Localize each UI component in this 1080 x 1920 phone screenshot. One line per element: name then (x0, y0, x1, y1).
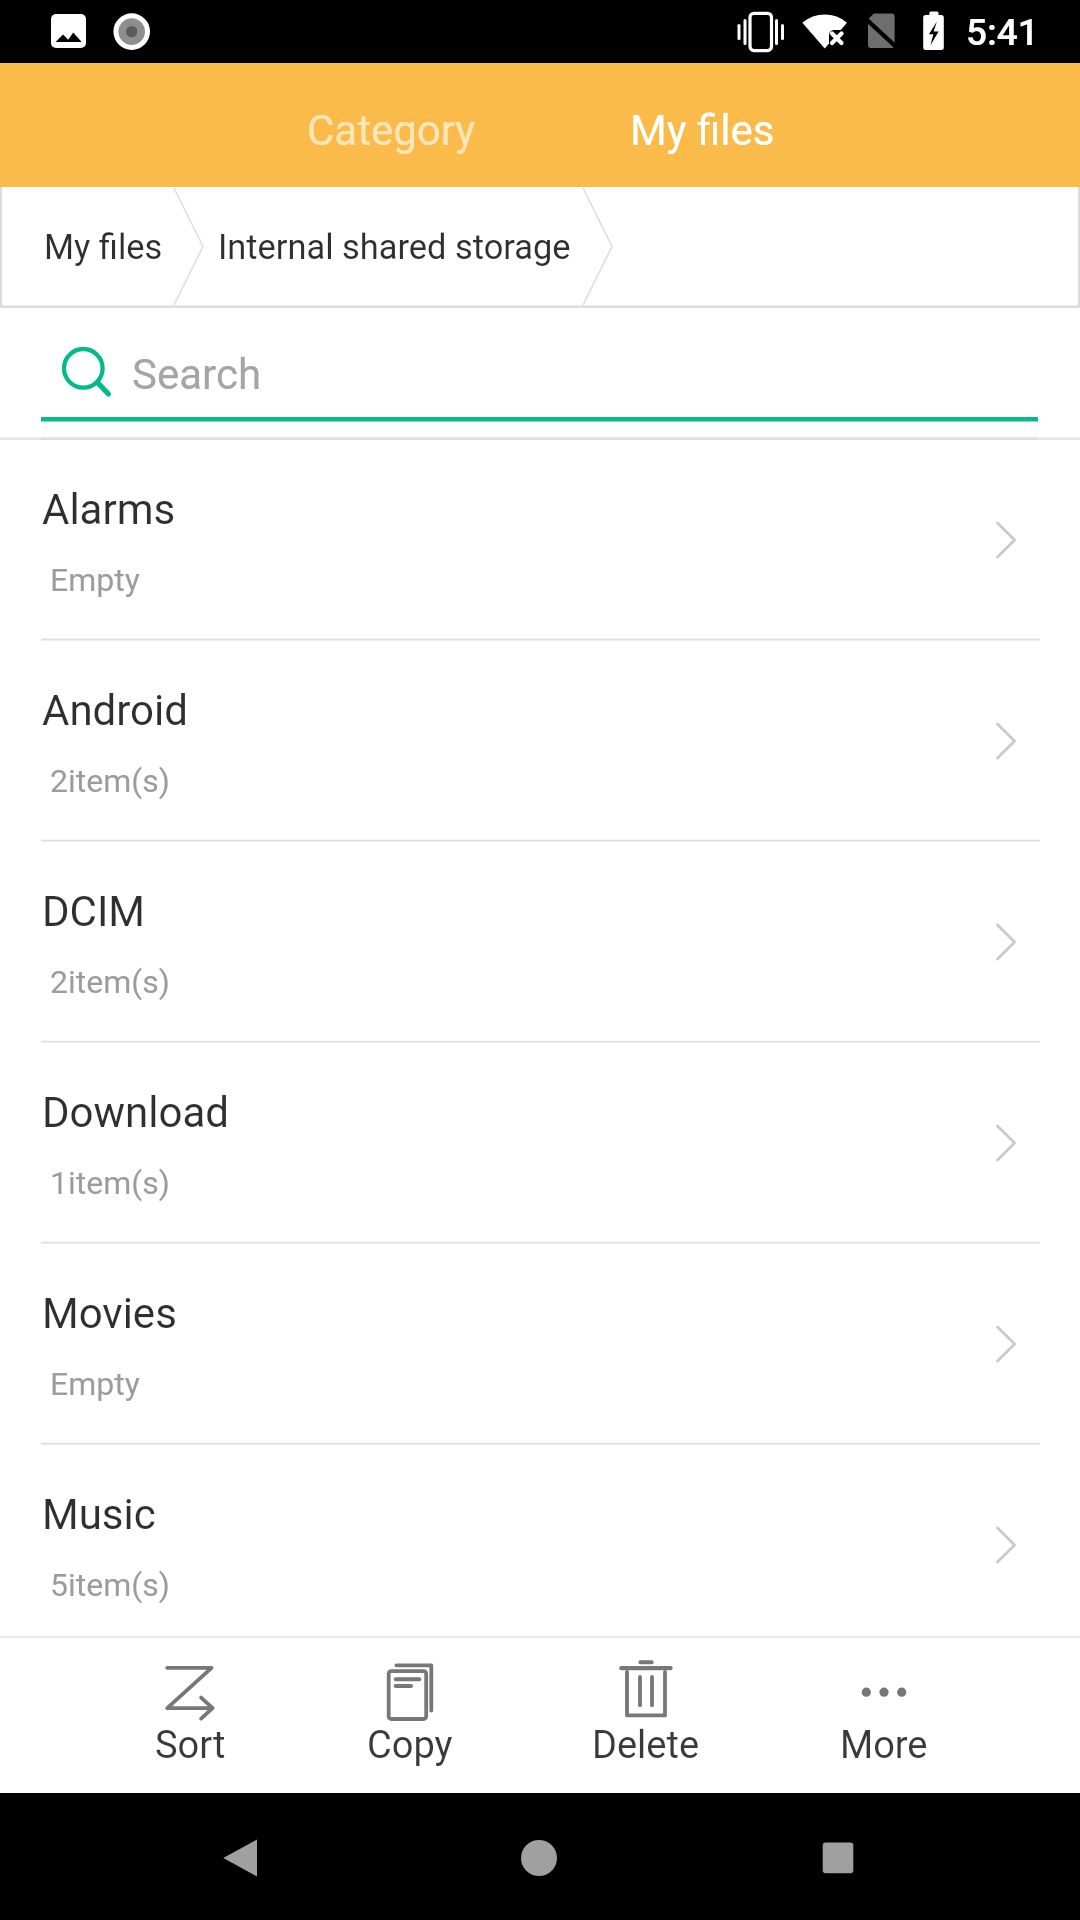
staticText: Movies (42, 1289, 177, 1338)
staticText: Search (132, 350, 262, 399)
button[interactable]: Android (0, 641, 1080, 842)
staticText: Music (42, 1490, 156, 1539)
staticText: Category (307, 106, 476, 155)
staticText: Alarms (42, 485, 176, 534)
button[interactable]: Delete (541, 1636, 751, 1793)
staticText: My files (630, 106, 775, 155)
button[interactable]: Music (0, 1445, 1080, 1636)
staticText: 5:41 (966, 11, 1039, 54)
button[interactable]: Back (180, 1793, 300, 1920)
button[interactable]: Search (41, 322, 1038, 421)
staticText: 1item(s) (50, 1164, 170, 1202)
staticText: 5item(s) (50, 1566, 170, 1604)
button[interactable]: Recent apps (778, 1793, 898, 1920)
button[interactable]: Alarms (0, 440, 1080, 641)
staticText: 2item(s) (50, 963, 170, 1001)
staticText: Android (42, 686, 188, 735)
staticText: 2item(s) (50, 762, 170, 800)
button[interactable]: More (779, 1636, 989, 1793)
staticText: More (840, 1723, 928, 1768)
staticText: My files (44, 227, 163, 267)
button[interactable]: Category (231, 63, 551, 187)
staticText: Download (42, 1088, 229, 1137)
button[interactable]: DCIM (0, 842, 1080, 1043)
button[interactable]: Download (0, 1043, 1080, 1244)
button[interactable]: Copy (305, 1636, 515, 1793)
staticText: Copy (367, 1723, 453, 1768)
staticText: Delete (592, 1723, 700, 1768)
button[interactable]: Internal shared storage (218, 227, 571, 267)
button[interactable]: Home (479, 1793, 599, 1920)
staticText: DCIM (42, 887, 145, 936)
staticText: Empty (50, 1365, 140, 1403)
button[interactable]: Movies (0, 1244, 1080, 1445)
button[interactable]: My files (542, 63, 862, 187)
button[interactable]: My files (44, 227, 163, 267)
staticText: Empty (50, 561, 140, 599)
staticText: Internal shared storage (218, 227, 571, 267)
staticText: Sort (155, 1723, 226, 1768)
button[interactable]: Sort (85, 1636, 295, 1793)
